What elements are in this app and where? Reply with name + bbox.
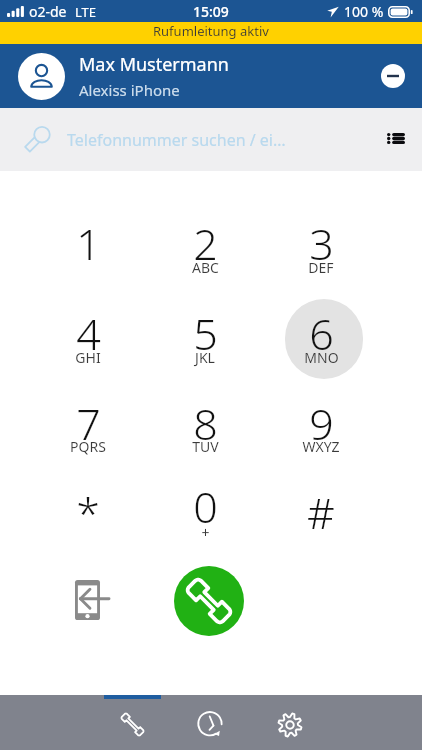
button[interactable]: Contacts list: [379, 121, 413, 155]
staticText: 0: [193, 477, 218, 536]
button[interactable]: Keypad: [93, 695, 171, 750]
staticText: GHI: [75, 348, 101, 367]
staticText: 5: [193, 304, 218, 363]
staticText: Alexiss iPhone: [79, 80, 180, 100]
staticText: WXYZ: [302, 437, 340, 456]
staticText: 100 %: [344, 2, 384, 21]
button[interactable]: [44, 198, 132, 286]
button[interactable]: [44, 465, 132, 553]
staticText: Telefonnummer suchen / ei…: [67, 129, 286, 151]
staticText: 6: [309, 304, 334, 363]
button[interactable]: Settings: [251, 695, 329, 750]
staticText: ABC: [192, 258, 219, 277]
staticText: #: [307, 483, 335, 542]
staticText: LTE: [75, 3, 97, 21]
staticText: DEF: [308, 258, 334, 277]
staticText: Max Mustermann: [79, 52, 229, 77]
staticText: 2: [193, 214, 218, 273]
button[interactable]: Disconnect: [375, 58, 411, 94]
button[interactable]: [277, 378, 365, 466]
button[interactable]: Call: [174, 566, 244, 636]
button[interactable]: Max Mustermann: [0, 44, 422, 108]
staticText: 15:09: [193, 2, 229, 21]
staticText: 8: [193, 394, 218, 453]
button[interactable]: [161, 288, 249, 376]
staticText: 3: [309, 214, 334, 273]
staticText: 4: [76, 304, 101, 363]
button[interactable]: Recents: [172, 695, 250, 750]
staticText: +: [201, 523, 210, 542]
staticText: 7: [76, 394, 101, 453]
staticText: 9: [309, 394, 334, 453]
staticText: JKL: [195, 348, 215, 367]
button[interactable]: [44, 378, 132, 466]
button[interactable]: Telefonnummer suchen / ei…: [0, 108, 422, 171]
button[interactable]: [161, 198, 249, 286]
button[interactable]: Transfer call: [64, 572, 120, 628]
button[interactable]: [44, 288, 132, 376]
staticText: Rufumleitung aktiv: [153, 22, 269, 40]
staticText: PQRS: [70, 437, 106, 456]
button[interactable]: [277, 198, 365, 286]
button[interactable]: [277, 288, 365, 376]
staticText: 1: [76, 214, 101, 273]
staticText: MNO: [304, 348, 339, 367]
button[interactable]: [161, 465, 249, 553]
staticText: TUV: [192, 437, 219, 456]
staticText: *: [76, 483, 100, 542]
button[interactable]: [161, 378, 249, 466]
staticText: o2-de: [29, 2, 67, 21]
button[interactable]: [277, 465, 365, 553]
